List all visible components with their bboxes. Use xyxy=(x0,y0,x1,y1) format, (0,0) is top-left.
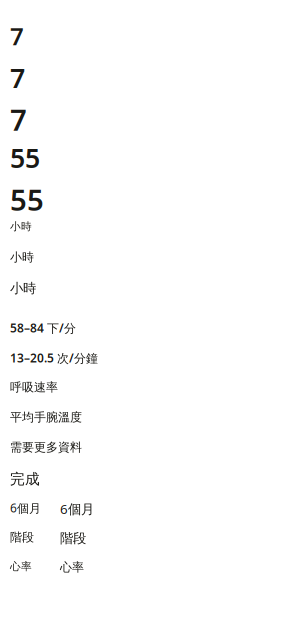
staticText: 平均手腕溫度 xyxy=(10,410,82,425)
staticText: 7 xyxy=(10,60,25,95)
staticText: 55 xyxy=(10,140,40,175)
staticText: 55 xyxy=(10,180,44,219)
staticText: 6個月 xyxy=(10,500,41,516)
staticText: 6個月 xyxy=(60,500,94,518)
staticText: 小時 xyxy=(10,250,34,265)
staticText: 7 xyxy=(10,20,24,52)
staticText: 心率 xyxy=(60,560,84,575)
staticText: 7 xyxy=(10,100,27,139)
staticText: 58–84 下/分 xyxy=(10,320,76,336)
staticText: 呼吸速率 xyxy=(10,380,58,395)
staticText: 13–20.5 次/分鐘 xyxy=(10,350,98,366)
staticText: 階段 xyxy=(60,530,86,546)
staticText: 階段 xyxy=(10,530,34,545)
staticText: 完成 xyxy=(10,470,40,488)
staticText: 小時 xyxy=(10,280,36,296)
staticText: 小時 xyxy=(10,220,32,233)
staticText: 心率 xyxy=(10,560,32,573)
staticText: 需要更多資料 xyxy=(10,440,82,455)
